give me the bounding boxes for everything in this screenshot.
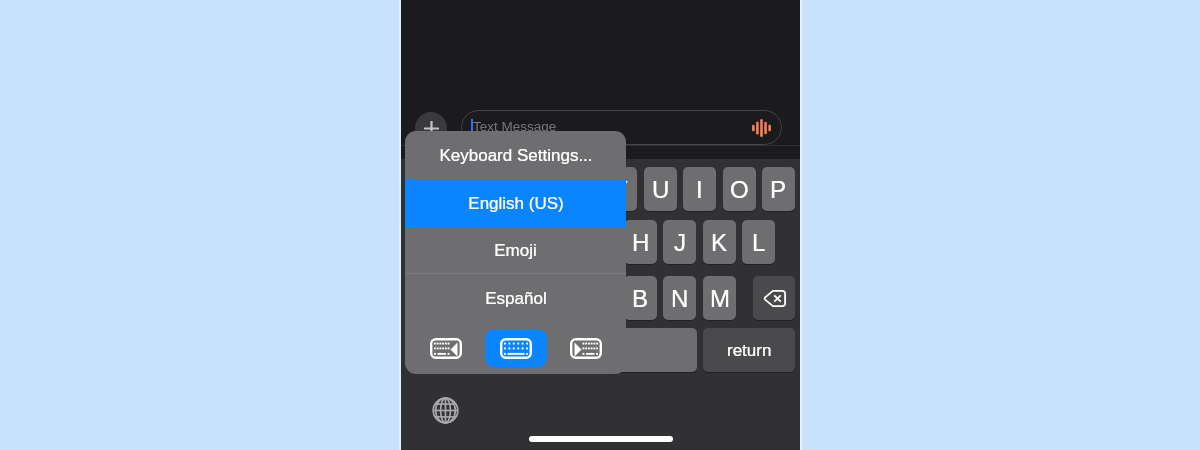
button[interactable]: O [723, 167, 756, 211]
button[interactable]: L [742, 220, 775, 264]
button[interactable]: U [644, 167, 677, 211]
button[interactable]: Y [604, 167, 637, 211]
button[interactable]: Current keyboard [485, 329, 547, 367]
staticText: O [730, 176, 749, 203]
button[interactable]: 123 [407, 328, 452, 372]
staticText: N [671, 285, 689, 312]
button[interactable]: C [545, 276, 578, 320]
button[interactable]: N [663, 276, 696, 320]
staticText: X [513, 285, 530, 312]
staticText: P [770, 176, 787, 203]
staticText: R [533, 176, 551, 203]
button[interactable]: Q [407, 167, 440, 211]
staticText: D [513, 229, 531, 256]
staticText: Y [612, 176, 629, 203]
button[interactable]: Backspace [753, 276, 795, 320]
staticText: Emoji [494, 241, 537, 260]
staticText: M [710, 285, 730, 312]
button[interactable]: Emoji [405, 228, 626, 273]
button[interactable]: F [545, 220, 578, 264]
staticText: Z [475, 285, 490, 312]
button[interactable]: X [505, 276, 538, 320]
button[interactable]: I [683, 167, 716, 211]
button[interactable]: B [624, 276, 657, 320]
staticText: B [632, 285, 649, 312]
staticText: T [574, 176, 589, 203]
staticText: K [711, 229, 728, 256]
button[interactable]: W [446, 167, 479, 211]
button[interactable]: Text Message [461, 110, 782, 145]
button[interactable]: Space [458, 328, 697, 372]
button[interactable]: M [703, 276, 736, 320]
button[interactable]: Add attachment [415, 112, 447, 144]
button[interactable]: Español [405, 274, 626, 322]
staticText: E [494, 176, 511, 203]
button[interactable]: S [466, 220, 499, 264]
staticText: W [451, 176, 474, 203]
button[interactable]: return [703, 328, 795, 372]
button[interactable]: R [525, 167, 558, 211]
staticText: L [752, 229, 766, 256]
button[interactable]: E [486, 167, 519, 211]
button[interactable]: Next keyboard [555, 329, 617, 367]
button[interactable]: G [584, 220, 617, 264]
staticText: English (US) [468, 194, 564, 213]
staticText: I [696, 176, 703, 203]
staticText: Text Message [473, 119, 557, 134]
button[interactable]: D [505, 220, 538, 264]
button[interactable]: Keyboard Settings... [405, 131, 626, 179]
staticText: Keyboard Settings... [439, 146, 593, 165]
button[interactable]: P [762, 167, 795, 211]
staticText: U [652, 176, 670, 203]
button[interactable]: Z [466, 276, 499, 320]
button[interactable]: A [426, 220, 459, 264]
button[interactable]: K [703, 220, 736, 264]
button[interactable]: J [663, 220, 696, 264]
staticText: Q [414, 176, 433, 203]
button[interactable]: Change keyboard language [431, 396, 460, 425]
staticText: Español [485, 289, 547, 308]
staticText: H [632, 229, 650, 256]
staticText: return [727, 341, 772, 360]
staticText: J [674, 229, 686, 256]
button[interactable]: H [624, 220, 657, 264]
button[interactable]: English (US) [405, 179, 626, 228]
button[interactable]: Previous keyboard [415, 329, 477, 367]
staticText: 123 [418, 342, 442, 358]
button[interactable]: T [565, 167, 598, 211]
